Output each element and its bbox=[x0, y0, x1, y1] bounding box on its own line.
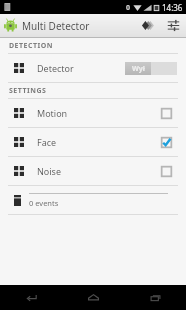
staticText: Face bbox=[37, 136, 57, 148]
staticText: DETECTION bbox=[9, 41, 53, 51]
button[interactable]: Face bbox=[0, 128, 186, 156]
button[interactable]: Home bbox=[62, 285, 124, 310]
button[interactable]: Unchecked bbox=[161, 108, 172, 119]
button[interactable]: Motion bbox=[0, 99, 186, 127]
button[interactable]: Recents bbox=[124, 285, 186, 310]
staticText: Detector bbox=[37, 62, 74, 74]
button[interactable]: Settings bbox=[160, 14, 186, 37]
button[interactable]: Detector bbox=[0, 54, 186, 82]
staticText: 0 events bbox=[29, 198, 59, 208]
staticText: Wył bbox=[132, 64, 145, 74]
button[interactable]: Checked bbox=[161, 137, 172, 148]
button[interactable]: Detector off bbox=[125, 62, 177, 75]
button[interactable]: Noise bbox=[0, 157, 186, 185]
button[interactable]: 0 events bbox=[0, 186, 186, 214]
staticText: 14:36 bbox=[162, 2, 183, 13]
staticText: Noise bbox=[37, 165, 61, 177]
staticText: SETTINGS bbox=[9, 86, 47, 96]
staticText: Motion bbox=[37, 107, 68, 119]
staticText: Multi Detector bbox=[22, 19, 90, 33]
staticText: 0 bbox=[126, 3, 131, 13]
button[interactable]: Back bbox=[0, 285, 62, 310]
button[interactable]: Detections bbox=[134, 14, 160, 37]
button[interactable]: Unchecked bbox=[161, 166, 172, 177]
